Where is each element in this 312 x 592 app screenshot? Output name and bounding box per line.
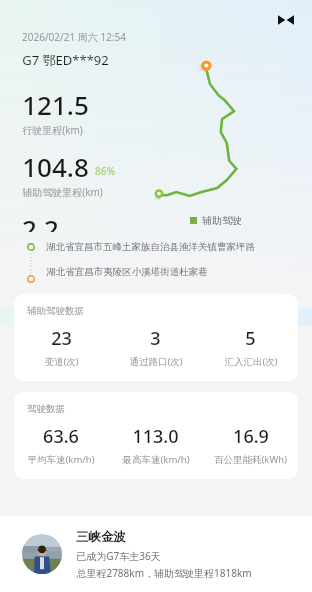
- staticText: 2.2: [22, 211, 59, 232]
- staticText: 驾驶数据: [27, 403, 65, 415]
- staticText: 86%: [95, 164, 115, 178]
- staticText: 通过路口(次): [129, 355, 183, 368]
- staticText: 平均车速(km/h): [27, 453, 95, 466]
- staticText: 湖北省宜昌市夷陵区小溪塔街道杜家巷: [46, 266, 208, 278]
- staticText: 辅助驾驶数据: [27, 305, 84, 317]
- staticText: 汇入汇出(次): [224, 355, 278, 368]
- button[interactable]: 三峡金波: [0, 516, 312, 592]
- button[interactable]: 辅助驾驶数据: [14, 294, 298, 381]
- staticText: 百公里能耗(kWh): [214, 453, 287, 466]
- staticText: 113.0: [132, 424, 179, 449]
- staticText: 23: [51, 326, 72, 351]
- staticText: 已成为G7车主36天: [76, 549, 161, 563]
- staticText: 5: [245, 326, 256, 351]
- staticText: 变道(次): [44, 355, 79, 368]
- staticText: 行驶里程(km): [22, 123, 83, 137]
- staticText: 辅助驾驶: [202, 214, 242, 227]
- staticText: 辅助驾驶里程(km): [22, 185, 103, 199]
- button[interactable]: Close: [270, 4, 302, 36]
- staticText: 16.9: [233, 424, 269, 449]
- staticText: 63.6: [43, 424, 79, 449]
- staticText: 3: [150, 326, 161, 351]
- staticText: 121.5: [22, 87, 89, 122]
- staticText: 湖北省宜昌市五峰土家族自治县渔洋关镇曹家坪路: [46, 241, 255, 253]
- staticText: G7 鄂ED***92: [22, 51, 109, 69]
- staticText: 最高车速(km/h): [122, 453, 190, 466]
- staticText: 三峡金波: [76, 529, 126, 545]
- staticText: 104.8: [22, 149, 89, 184]
- staticText: 2026/02/21 周六 12:54: [22, 30, 126, 44]
- button[interactable]: 驾驶数据: [14, 392, 298, 479]
- staticText: 总里程2788km，辅助驾驶里程1818km: [76, 566, 252, 580]
